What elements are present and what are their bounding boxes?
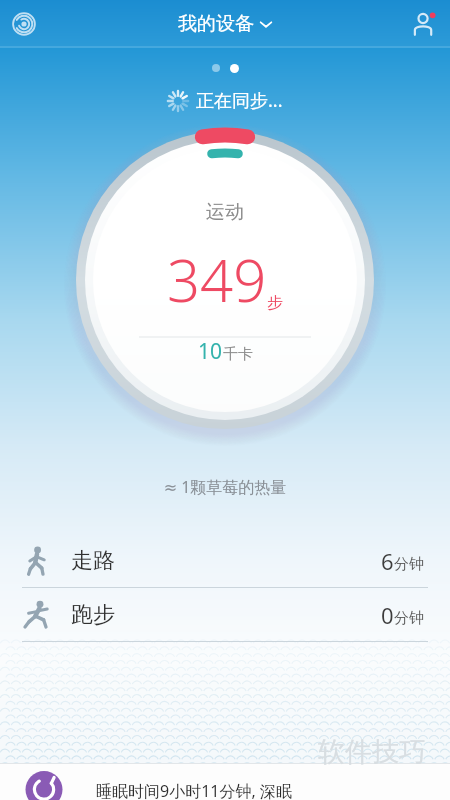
- staticText: 正在同步...: [196, 88, 283, 113]
- button[interactable]: 跑步: [22, 588, 428, 641]
- staticText: 10: [198, 337, 223, 366]
- staticText: 运动: [206, 200, 244, 224]
- staticText: 我的设备: [178, 12, 254, 36]
- staticText: 睡眠时间9小时11分钟, 深眠: [96, 780, 292, 800]
- button[interactable]: 运动: [75, 130, 375, 440]
- button[interactable]: Profile: [402, 2, 446, 46]
- staticText: 349: [167, 240, 267, 319]
- staticText: 跑步: [71, 601, 115, 629]
- button[interactable]: Menu: [2, 2, 46, 46]
- button[interactable]: 我的设备: [178, 12, 273, 36]
- staticText: 0: [381, 600, 394, 630]
- staticText: 走路: [71, 547, 115, 575]
- button[interactable]: 走路: [22, 534, 428, 587]
- button[interactable]: 睡眠时间9小时11分钟, 深眠: [0, 763, 450, 800]
- staticText: 分钟: [394, 555, 424, 574]
- staticText: 分钟: [394, 609, 424, 628]
- staticText: 步: [267, 293, 283, 313]
- staticText: 6: [381, 546, 394, 576]
- staticText: 软件技巧: [318, 735, 426, 769]
- staticText: ≈ 1颗草莓的热量: [0, 476, 450, 498]
- staticText: 千卡: [223, 345, 253, 364]
